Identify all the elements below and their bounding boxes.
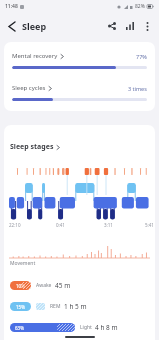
button[interactable]: 63% <box>10 323 149 332</box>
button[interactable] <box>141 20 153 32</box>
button[interactable]: Sleep stages <box>10 142 60 152</box>
staticText: 22:10 <box>9 222 21 228</box>
staticText: 3 times <box>128 85 147 92</box>
staticText: Sleep stages <box>10 142 54 152</box>
button[interactable] <box>123 19 137 33</box>
staticText: Sleep <box>22 20 47 32</box>
button[interactable]: Mental recovery <box>12 52 147 69</box>
button[interactable]: 15% <box>10 302 149 311</box>
staticText: Sleep cycles <box>12 84 46 92</box>
staticText: Awake <box>36 282 52 289</box>
button[interactable]: 10% <box>10 281 149 290</box>
staticText: 3:11 <box>104 222 113 228</box>
staticText: 45 m <box>55 281 71 290</box>
staticText: 82% <box>135 3 145 10</box>
staticText: Movement <box>10 260 36 267</box>
staticText: 11:48 <box>5 3 18 10</box>
staticText: 63% <box>15 325 24 331</box>
staticText: 10% <box>16 283 25 289</box>
button[interactable]: Sleep cycles <box>12 84 147 101</box>
staticText: 4 h 8 m <box>95 323 118 332</box>
button[interactable] <box>105 19 119 33</box>
button[interactable] <box>6 20 18 32</box>
staticText: 15% <box>16 304 25 310</box>
staticText: REM <box>50 303 61 310</box>
staticText: Light <box>80 324 92 331</box>
staticText: 5:41 <box>145 222 154 228</box>
staticText: 0:41 <box>56 222 65 228</box>
staticText: 77% <box>136 53 147 60</box>
staticText: Mental recovery <box>12 52 58 60</box>
staticText: 1 h 5 m <box>64 302 87 311</box>
